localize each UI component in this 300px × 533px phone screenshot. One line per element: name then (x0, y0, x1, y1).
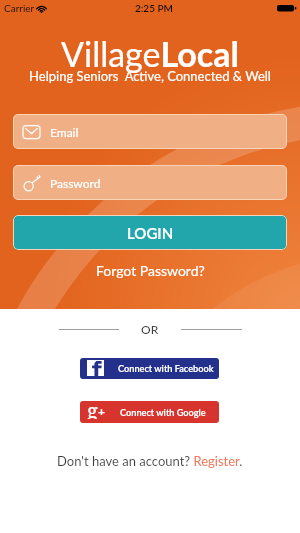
staticText: g (87, 401, 98, 419)
staticText: Connect with Google (120, 407, 206, 418)
button[interactable]: Don't have an account? Register. (57, 453, 243, 469)
staticText: VillageLocal (61, 33, 239, 74)
staticText: Email (50, 125, 79, 139)
button[interactable]: Email (13, 114, 287, 149)
staticText: + (98, 404, 105, 418)
staticText: Helping Seniors Active, Connected & Well (29, 68, 271, 84)
staticText: 2:25 PM (135, 2, 173, 14)
staticText: Carrier (4, 2, 35, 14)
staticText: Password (50, 176, 101, 190)
button[interactable]: Forgot Password? (96, 262, 205, 279)
button[interactable]: Connect with Facebook (80, 358, 219, 379)
staticText: OR (141, 322, 159, 336)
button[interactable]: Password (13, 165, 287, 200)
button[interactable]: g (80, 401, 219, 423)
other: Battery (277, 5, 297, 12)
other: Wi-Fi (36, 4, 47, 13)
button[interactable]: LOGIN (13, 215, 287, 250)
staticText: Connect with Facebook (118, 363, 214, 374)
staticText: LOGIN (127, 224, 174, 242)
